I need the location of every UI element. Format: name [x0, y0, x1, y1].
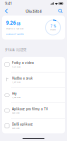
- button[interactable]: Search: [57, 7, 64, 14]
- staticText: Další aplikace: [12, 122, 33, 126]
- staticText: UVOLNIT MÍSTO: [6, 32, 24, 35]
- staticText: 9:41: [5, 1, 12, 6]
- staticText: GB: [16, 22, 20, 26]
- button[interactable]: Back: [3, 7, 10, 14]
- staticText: 1,87 GB: [12, 80, 20, 83]
- staticText: využito z 128 GB: [6, 27, 23, 30]
- button[interactable]: Další aplikace: [2, 118, 65, 133]
- staticText: Fotky a videa: [12, 61, 34, 65]
- staticText: využito: [50, 28, 56, 31]
- staticText: 9.26: [6, 20, 16, 26]
- staticText: Úložiště: [25, 8, 41, 14]
- button[interactable]: Aplikace pro filmy a TV: [2, 103, 65, 118]
- staticText: Hry: [12, 91, 17, 96]
- button[interactable]: Hudba a zvuk: [2, 72, 65, 88]
- button[interactable]: UVOLNIT MÍSTO: [6, 30, 24, 35]
- button[interactable]: Hry: [2, 88, 65, 103]
- staticText: 1,02 GB: [12, 96, 20, 99]
- button[interactable]: Fotky a videa: [2, 57, 65, 72]
- staticText: SPRÁVA ÚLOŽIŠTĚ: [5, 48, 26, 52]
- staticText: 4,21 GB: [12, 65, 20, 68]
- staticText: 7 %: [50, 24, 55, 28]
- staticText: Aplikace pro filmy a TV: [12, 107, 48, 111]
- staticText: 640 MB: [12, 126, 19, 129]
- staticText: Hudba a zvuk: [12, 76, 33, 80]
- staticText: 820 MB: [12, 111, 19, 114]
